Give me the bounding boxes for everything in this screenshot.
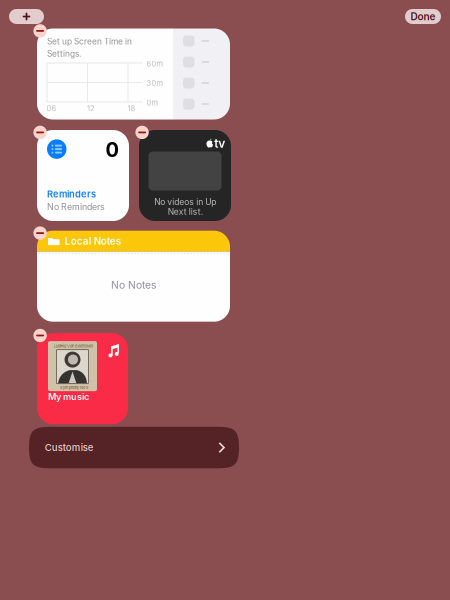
staticText: No Notes: [111, 279, 156, 291]
staticText: 30m: [146, 79, 163, 88]
staticText: Customise: [45, 442, 94, 453]
staticText: Set up Screen Time in Settings.: [47, 35, 132, 60]
staticText: 18: [127, 104, 135, 113]
button[interactable]: Add widget: [9, 9, 44, 24]
staticText: Done: [410, 10, 435, 23]
button[interactable]: Done: [405, 9, 441, 24]
staticText: tv: [214, 136, 225, 150]
staticText: Reminders: [47, 189, 96, 200]
staticText: No Reminders: [47, 201, 105, 212]
staticText: Symphony No 5: [60, 385, 88, 390]
staticText: No videos in Up Next list.: [154, 197, 216, 216]
staticText: 0: [105, 137, 118, 162]
staticText: My music: [48, 391, 89, 402]
button[interactable]: Customise: [29, 427, 239, 468]
staticText: 60m: [146, 59, 163, 68]
staticText: 12: [87, 104, 95, 113]
staticText: Ludwig Van Beethoven: [54, 344, 93, 348]
staticText: 06: [46, 104, 56, 113]
staticText: Local Notes: [65, 235, 121, 247]
staticText: 0m: [146, 98, 158, 107]
